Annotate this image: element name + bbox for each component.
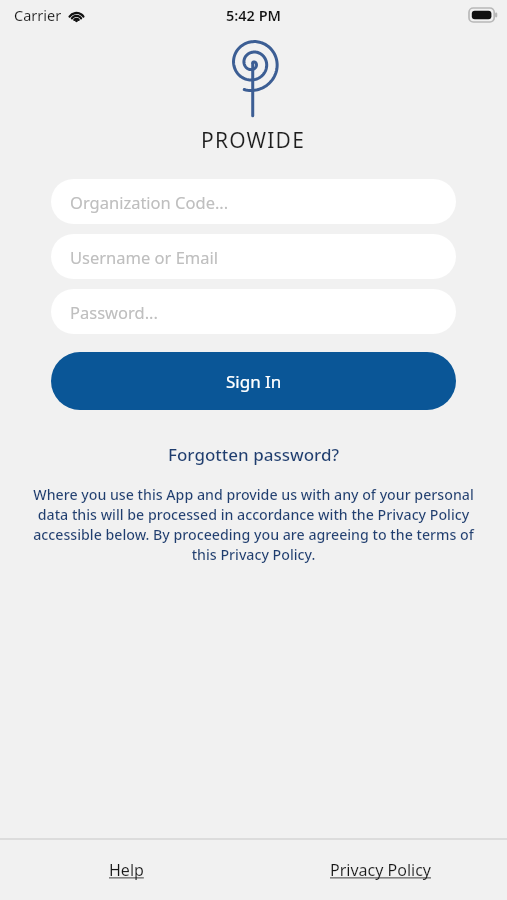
staticText: Username or Email <box>70 246 219 268</box>
staticText: PROWIDE <box>201 126 306 155</box>
button[interactable]: Sign In <box>51 352 456 410</box>
button[interactable]: Organization Code... <box>51 179 456 224</box>
button[interactable]: Help <box>95 853 158 887</box>
staticText: Where you use this App and provide us wi… <box>26 485 481 564</box>
button[interactable]: Username or Email <box>51 234 456 279</box>
button[interactable]: Password... <box>51 289 456 334</box>
staticText: Privacy Policy <box>330 859 431 881</box>
button[interactable]: Privacy Policy <box>316 853 445 887</box>
staticText: Organization Code... <box>70 191 229 213</box>
button[interactable]: Forgotten password? <box>160 439 348 470</box>
staticText: Help <box>109 859 144 881</box>
staticText: Carrier <box>14 5 62 25</box>
staticText: Password... <box>70 301 158 323</box>
staticText: Sign In <box>226 370 282 393</box>
staticText: 5:42 PM <box>226 5 282 25</box>
staticText: Forgotten password? <box>168 443 340 466</box>
